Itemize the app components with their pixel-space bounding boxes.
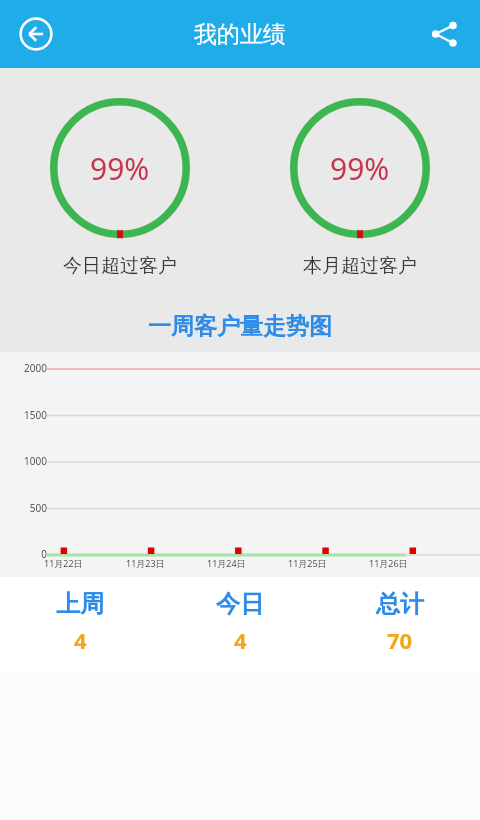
staticText: 99% [330, 148, 390, 189]
staticText: 11月23日 [126, 557, 165, 569]
button[interactable]: 总计 [320, 577, 480, 672]
button[interactable]: 上周 [0, 577, 160, 672]
staticText: 我的业绩 [194, 20, 286, 49]
staticText: 4 [74, 625, 87, 655]
staticText: 500 [29, 501, 47, 515]
staticText: 1500 [24, 408, 47, 422]
staticText: 11月25日 [288, 557, 327, 569]
staticText: 99% [90, 148, 150, 189]
button[interactable]: 今日 [160, 577, 320, 672]
button[interactable]: Share [422, 12, 466, 56]
staticText: 70 [387, 625, 413, 655]
staticText: 今日超过客户 [63, 254, 177, 278]
staticText: 上周 [56, 589, 104, 619]
staticText: 总计 [376, 589, 424, 619]
staticText: 11月24日 [207, 557, 246, 569]
staticText: 11月26日 [369, 557, 408, 569]
staticText: 0 [41, 547, 47, 561]
staticText: 2000 [24, 361, 47, 375]
staticText: 本月超过客户 [303, 254, 417, 278]
staticText: 1000 [24, 454, 47, 468]
staticText: 4 [234, 625, 247, 655]
staticText: 11月22日 [44, 557, 83, 569]
staticText: 一周客户量走势图 [148, 312, 332, 341]
button[interactable]: Back [14, 12, 58, 56]
staticText: 今日 [216, 589, 264, 619]
